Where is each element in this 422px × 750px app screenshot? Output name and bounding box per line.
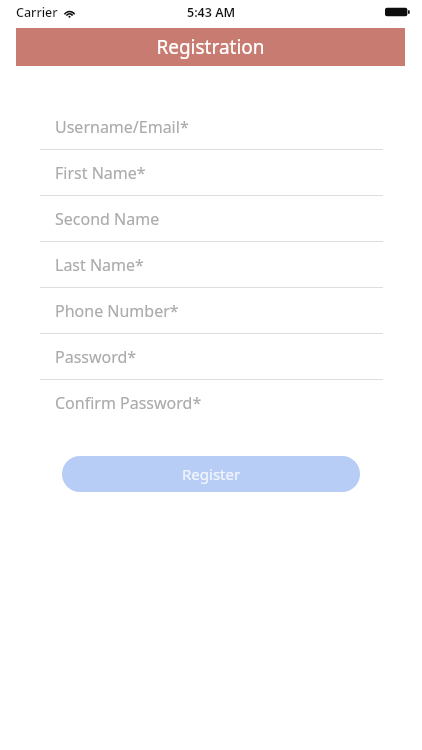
staticText: Username/Email* xyxy=(55,116,189,138)
staticText: Last Name* xyxy=(55,254,144,276)
staticText: Registration xyxy=(156,34,265,60)
button[interactable]: Last Name* xyxy=(40,241,383,287)
button[interactable]: Register xyxy=(62,456,360,492)
staticText: First Name* xyxy=(55,162,146,184)
button[interactable]: First Name* xyxy=(40,149,383,195)
other: Battery full xyxy=(385,6,411,18)
staticText: 5:43 AM xyxy=(187,4,236,21)
button[interactable]: Phone Number* xyxy=(40,287,383,333)
staticText: Password* xyxy=(55,346,137,368)
other: Wi-Fi signal xyxy=(63,8,76,18)
staticText: Second Name xyxy=(55,208,160,230)
staticText: Carrier xyxy=(16,4,58,21)
button[interactable]: Confirm Password* xyxy=(40,379,383,425)
button[interactable]: Password* xyxy=(40,333,383,379)
staticText: Phone Number* xyxy=(55,300,179,322)
button[interactable]: Second Name xyxy=(40,195,383,241)
button[interactable]: Registration xyxy=(16,28,405,66)
staticText: Register xyxy=(182,464,241,484)
staticText: Confirm Password* xyxy=(55,392,202,414)
button[interactable]: Username/Email* xyxy=(40,103,383,149)
